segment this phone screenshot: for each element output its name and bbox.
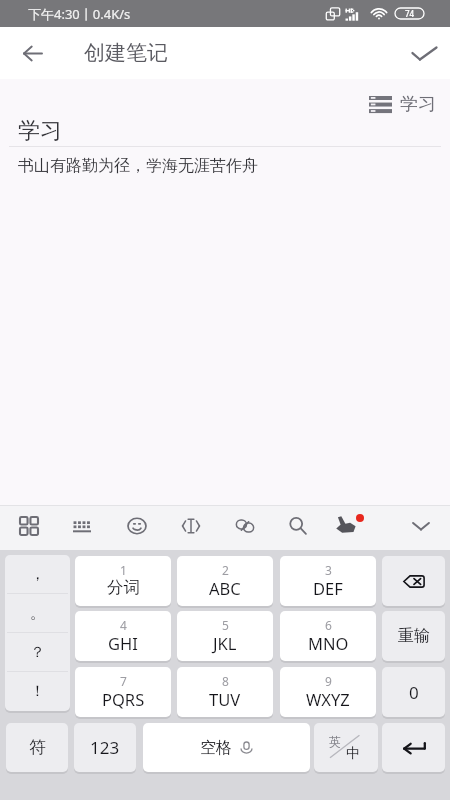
staticText: WXYZ	[306, 688, 350, 710]
button[interactable]: Switch keyboard	[65, 509, 99, 543]
button[interactable]: 3	[280, 556, 376, 606]
button[interactable]: 0	[382, 667, 445, 717]
staticText: 中	[346, 745, 360, 763]
button[interactable]: 6	[280, 611, 376, 661]
staticText: 重输	[398, 626, 430, 646]
staticText: 学习	[18, 117, 62, 145]
staticText: 。	[30, 604, 45, 623]
button[interactable]: Link	[228, 509, 262, 543]
staticText: 符	[29, 737, 46, 758]
button[interactable]: 8	[177, 667, 273, 717]
staticText: 空格	[200, 738, 232, 758]
staticText: 3	[325, 562, 332, 578]
staticText: GHI	[108, 632, 138, 654]
button[interactable]: Handwriting	[335, 509, 369, 543]
button[interactable]: 1	[75, 556, 171, 606]
staticText: 1	[120, 562, 127, 578]
staticText: 创建笔记	[84, 40, 168, 66]
staticText: 0	[409, 681, 419, 704]
staticText: 9	[325, 673, 332, 689]
staticText: 英	[329, 734, 341, 749]
button[interactable]: Search	[281, 509, 315, 543]
staticText: 书山有路勤为径，学海无涯苦作舟	[18, 156, 258, 176]
staticText: ABC	[209, 577, 241, 599]
button[interactable]: 9	[280, 667, 376, 717]
button[interactable]: 英	[314, 723, 378, 772]
button[interactable]: Save	[398, 27, 450, 79]
button[interactable]: 2	[177, 556, 273, 606]
staticText: 123	[90, 736, 120, 759]
button[interactable]: Move cursor	[174, 509, 208, 543]
button[interactable]: Hide keyboard	[404, 509, 438, 543]
staticText: ！	[30, 682, 45, 701]
button[interactable]	[382, 556, 445, 606]
button[interactable]: ，	[5, 555, 70, 711]
button[interactable]: 空格	[143, 723, 310, 772]
staticText: 分词	[107, 577, 140, 598]
staticText: ？	[30, 643, 45, 662]
staticText: 7	[120, 673, 127, 689]
staticText: PQRS	[102, 688, 145, 710]
button[interactable]: 符	[6, 723, 68, 772]
staticText: TUV	[209, 688, 241, 710]
staticText: MNO	[308, 632, 349, 654]
staticText: 6	[325, 617, 332, 633]
button[interactable]: 4	[75, 611, 171, 661]
staticText: 下午4:30丨0.4K/s	[28, 5, 131, 23]
button[interactable]: Apps	[12, 509, 46, 543]
staticText: 2	[222, 562, 229, 578]
button[interactable]	[382, 723, 445, 772]
staticText: 8	[222, 673, 229, 689]
staticText: 74	[405, 8, 415, 19]
button[interactable]: Emoji	[120, 509, 154, 543]
staticText: 4	[120, 617, 127, 633]
button[interactable]: 123	[74, 723, 136, 772]
button[interactable]: 学习	[369, 93, 436, 116]
staticText: DEF	[313, 577, 343, 599]
staticText: 5	[222, 617, 229, 633]
staticText: ，	[30, 565, 45, 584]
staticText: JKL	[213, 632, 237, 654]
button[interactable]: 重输	[382, 611, 445, 661]
button[interactable]: Back	[8, 29, 56, 77]
button[interactable]: 5	[177, 611, 273, 661]
staticText: 学习	[400, 93, 436, 116]
button[interactable]: 7	[75, 667, 171, 717]
